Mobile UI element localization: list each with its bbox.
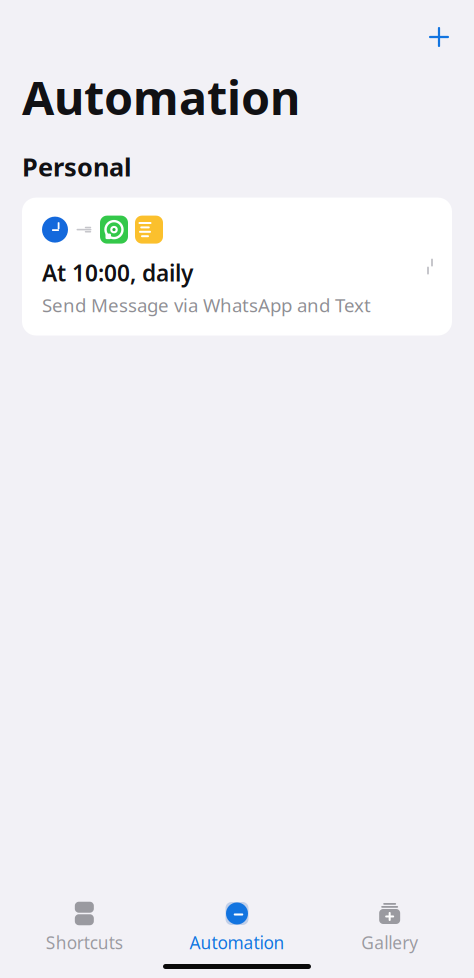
staticText: Automation <box>22 66 300 128</box>
staticText: Send Message via WhatsApp and Text <box>42 293 371 317</box>
button[interactable]: At 10:00, daily <box>22 198 452 335</box>
button[interactable]: Gallery <box>313 893 466 958</box>
staticText: Personal <box>22 150 132 184</box>
staticText: Gallery <box>361 931 418 954</box>
button[interactable]: New Automation <box>416 18 462 56</box>
staticText: At 10:00, daily <box>42 258 193 288</box>
staticText: Shortcuts <box>46 931 123 954</box>
button[interactable]: Automation <box>161 893 313 958</box>
button[interactable]: Shortcuts <box>8 893 161 958</box>
staticText: Automation <box>189 931 284 954</box>
